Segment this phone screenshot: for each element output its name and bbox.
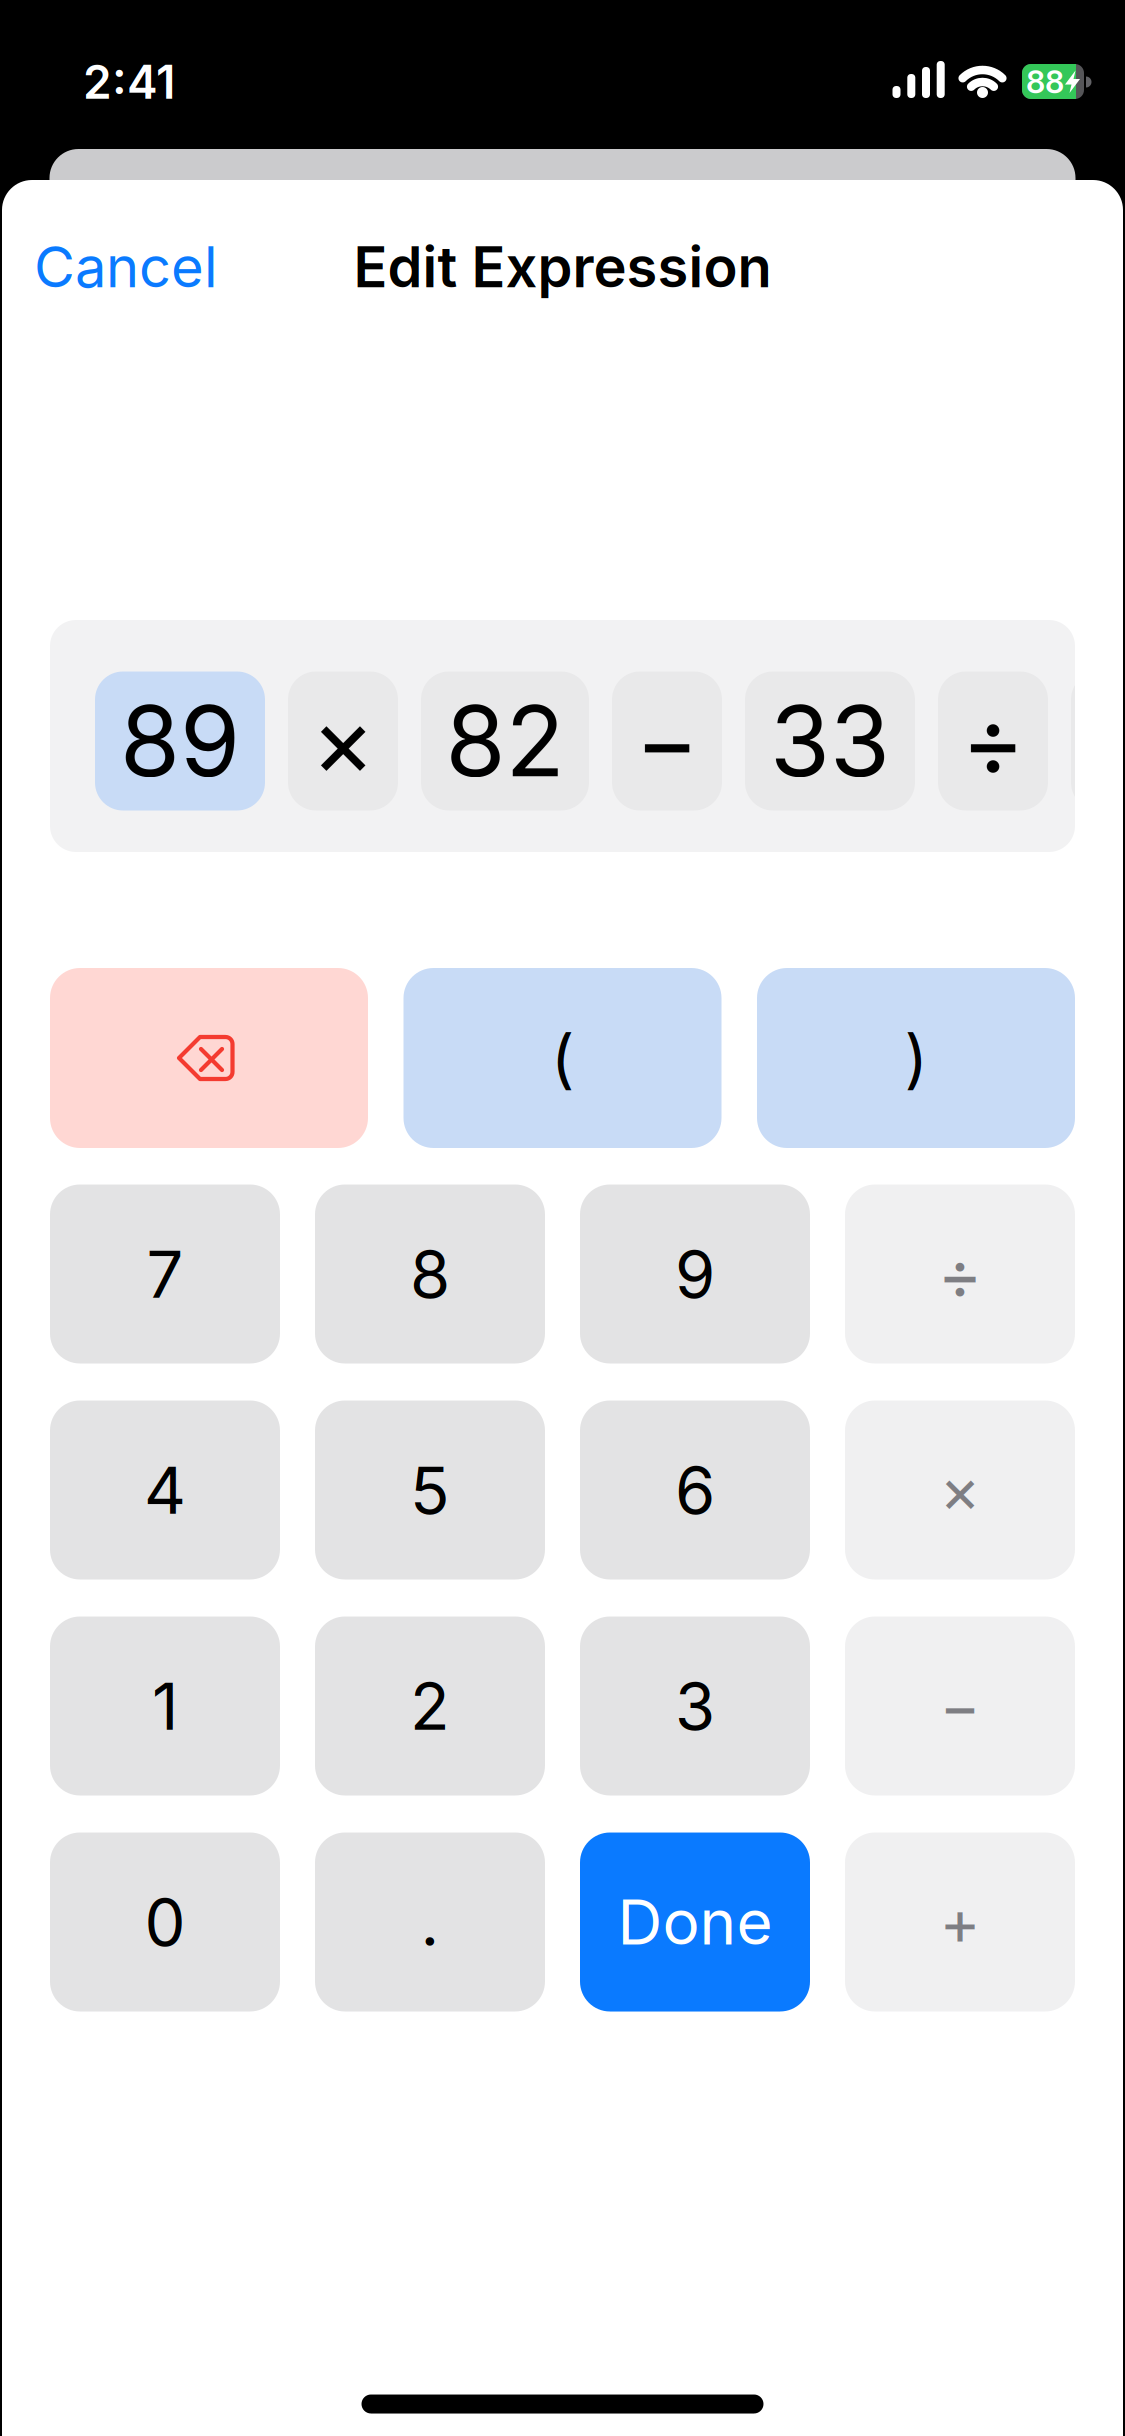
- button[interactable]: .: [315, 1832, 545, 2011]
- staticText: (: [551, 1019, 574, 1097]
- staticText: Cancel: [34, 233, 218, 301]
- button[interactable]: ): [757, 968, 1075, 1148]
- button[interactable]: −: [612, 671, 722, 810]
- button[interactable]: Cancel: [34, 233, 218, 301]
- button[interactable]: 2: [315, 1616, 545, 1795]
- staticText: −: [635, 682, 699, 800]
- button[interactable]: 5: [315, 1400, 545, 1579]
- staticText: 4: [1094, 682, 1125, 800]
- staticText: +: [939, 1884, 980, 1959]
- staticText: 4: [144, 1451, 186, 1529]
- button[interactable]: 1: [50, 1616, 280, 1795]
- button[interactable]: 8: [315, 1184, 545, 1363]
- staticText: 3: [675, 1667, 715, 1745]
- staticText: ×: [311, 682, 375, 800]
- button[interactable]: ×: [845, 1400, 1075, 1579]
- button[interactable]: 0: [50, 1832, 280, 2011]
- button[interactable]: 33: [745, 671, 915, 810]
- staticText: ): [904, 1019, 927, 1097]
- button[interactable]: 82: [421, 671, 589, 810]
- button[interactable]: ÷: [845, 1184, 1075, 1363]
- button[interactable]: 4: [1071, 671, 1125, 810]
- staticText: 1: [152, 1667, 178, 1745]
- staticText: 8: [410, 1235, 450, 1313]
- button[interactable]: ÷: [938, 671, 1048, 810]
- button[interactable]: 3: [580, 1616, 810, 1795]
- button[interactable]: ×: [288, 671, 398, 810]
- button[interactable]: (: [403, 968, 721, 1148]
- staticText: −: [939, 1668, 980, 1743]
- button[interactable]: +: [845, 1832, 1075, 2011]
- staticText: Edit Expression: [353, 233, 771, 301]
- staticText: 2:41: [83, 54, 175, 110]
- button[interactable]: −: [845, 1616, 1075, 1795]
- staticText: Done: [617, 1884, 772, 1959]
- button[interactable]: 9: [580, 1184, 810, 1363]
- staticText: 5: [410, 1451, 450, 1529]
- staticText: 89: [120, 682, 240, 800]
- staticText: .: [420, 1883, 439, 1961]
- staticText: 82: [445, 682, 564, 800]
- button[interactable]: 4: [50, 1400, 280, 1579]
- button[interactable]: 89: [95, 671, 265, 810]
- staticText: 7: [146, 1235, 183, 1313]
- staticText: 9: [675, 1235, 715, 1313]
- staticText: ×: [939, 1452, 980, 1527]
- staticText: 0: [144, 1883, 185, 1961]
- staticText: 6: [675, 1451, 715, 1529]
- staticText: ÷: [937, 1233, 982, 1315]
- button[interactable]: 6: [580, 1400, 810, 1579]
- staticText: 2: [410, 1667, 450, 1745]
- staticText: 33: [770, 682, 890, 800]
- button[interactable]: Done: [580, 1832, 810, 2011]
- button[interactable]: 7: [50, 1184, 280, 1363]
- staticText: ÷: [961, 682, 1025, 800]
- button[interactable]: [50, 968, 368, 1148]
- staticText: 88: [1026, 63, 1064, 101]
